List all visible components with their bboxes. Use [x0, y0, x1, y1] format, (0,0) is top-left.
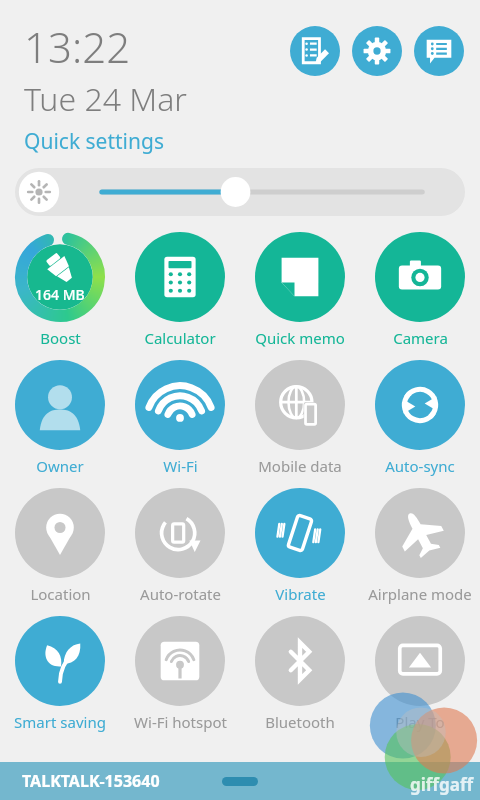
staticText: Tue 24 Mar [24, 77, 187, 121]
button[interactable]: Play To [360, 616, 480, 732]
button[interactable]: Smart saving [0, 616, 120, 732]
staticText: Auto-sync [385, 456, 455, 476]
staticText: Airplane mode [368, 584, 472, 604]
staticText: Bluetooth [265, 712, 335, 732]
button[interactable]: Location [0, 488, 120, 604]
button[interactable]: Vibrate [240, 488, 360, 604]
staticText: Auto-rotate [140, 584, 221, 604]
button[interactable]: Auto-sync [360, 360, 480, 476]
staticText: 164 MB [35, 285, 85, 304]
staticText: TALKTALK-153640 [22, 770, 160, 792]
staticText: Smart saving [14, 712, 106, 732]
staticText: Play To [395, 712, 445, 732]
button[interactable]: Brightness [15, 168, 465, 216]
button[interactable]: Calculator [120, 232, 240, 348]
button[interactable]: Airplane mode [360, 488, 480, 604]
staticText: Calculator [144, 328, 216, 348]
button[interactable]: Quick memo [240, 232, 360, 348]
staticText: Camera [393, 328, 448, 348]
staticText: Wi-Fi [163, 456, 198, 476]
button[interactable]: Owner [0, 360, 120, 476]
button[interactable]: Wi-Fi [120, 360, 240, 476]
button[interactable]: Camera [360, 232, 480, 348]
staticText: Vibrate [275, 584, 326, 604]
button[interactable]: Auto-rotate [120, 488, 240, 604]
staticText: 13:22 [24, 18, 131, 75]
staticText: Boost [40, 328, 81, 348]
button[interactable]: Mobile data [240, 360, 360, 476]
button[interactable]: Bluetooth [240, 616, 360, 732]
button[interactable]: Edit [290, 26, 340, 76]
button[interactable]: Boost [0, 232, 120, 348]
staticText: giffgaff [410, 773, 474, 796]
staticText: Mobile data [258, 456, 342, 476]
staticText: Location [30, 584, 91, 604]
button[interactable]: Wi-Fi hotspot [120, 616, 240, 732]
staticText: Quick memo [255, 328, 345, 348]
staticText: Quick settings [24, 127, 164, 156]
button[interactable]: Settings [352, 26, 402, 76]
staticText: Owner [36, 456, 84, 476]
button[interactable]: Notifications [414, 26, 464, 76]
staticText: Wi-Fi hotspot [134, 712, 227, 732]
